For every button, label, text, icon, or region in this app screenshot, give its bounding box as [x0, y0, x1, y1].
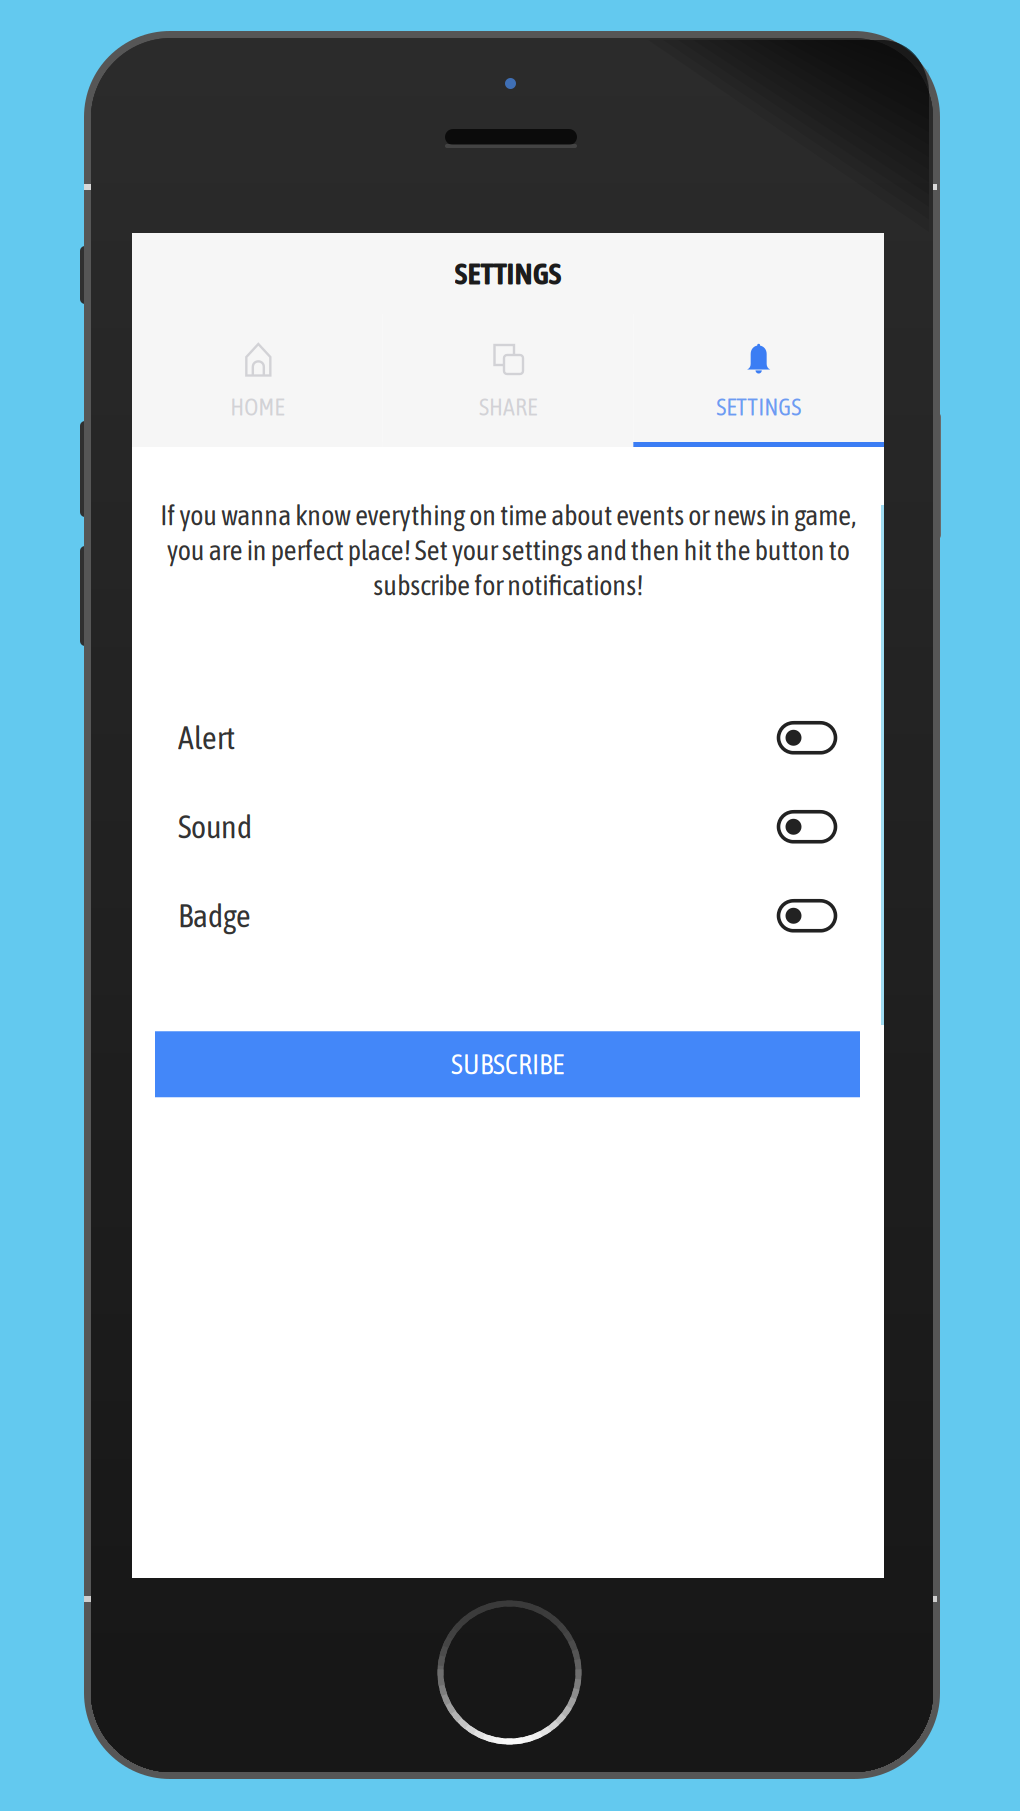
button[interactable]: Badge: [132, 871, 884, 960]
staticText: SUBSCRIBE: [451, 1048, 564, 1080]
button[interactable]: SHARE: [383, 314, 633, 447]
button[interactable]: HOME: [132, 314, 383, 447]
staticText: SETTINGS: [716, 393, 801, 420]
staticText: SHARE: [479, 393, 537, 420]
staticText: Alert: [178, 719, 235, 756]
staticText: HOME: [230, 393, 284, 420]
button[interactable]: Alert: [132, 693, 884, 782]
staticText: SETTINGS: [454, 256, 561, 291]
staticText: Badge: [178, 897, 251, 934]
staticText: If you wanna know everything on time abo…: [160, 499, 856, 601]
button[interactable]: SUBSCRIBE: [155, 1031, 860, 1097]
staticText: Sound: [178, 808, 252, 845]
button[interactable]: Sound: [132, 782, 884, 871]
button[interactable]: SETTINGS: [633, 314, 884, 447]
